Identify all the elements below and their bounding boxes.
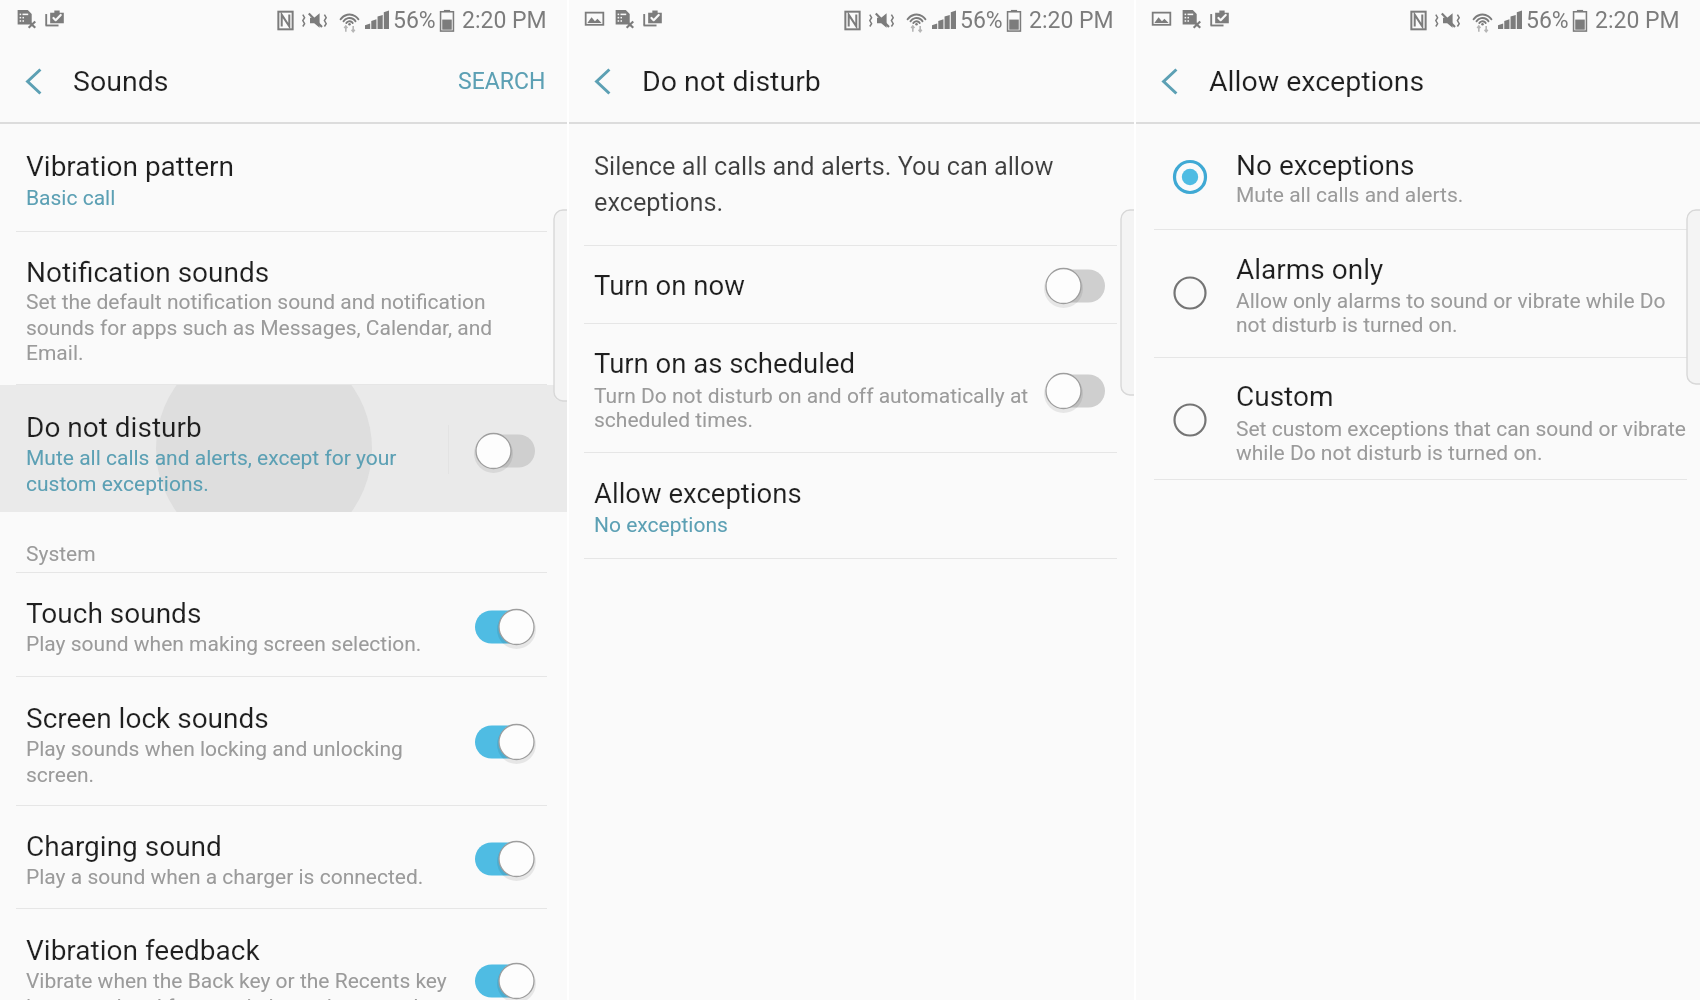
staticText: Alarms only [1236,253,1384,286]
button[interactable]: Turn off [464,955,548,1000]
staticText: Set the default notification sound and n… [26,290,504,365]
staticText: Basic call [26,186,116,211]
button[interactable]: Charging sound [0,807,460,909]
button[interactable]: Navigate up [1144,55,1196,107]
staticText: No exceptions [594,513,728,538]
button[interactable]: Navigate up [577,55,629,107]
staticText: Mute all calls and alerts. [1236,183,1464,208]
staticText: 2:20 PM [1029,7,1114,34]
staticText: Turn Do not disturb on and off automatic… [594,384,1036,432]
staticText: 56% [1526,7,1569,34]
staticText: Turn on as scheduled [594,347,856,379]
staticText: 2:20 PM [462,7,547,34]
staticText: Do not disturb [26,411,202,444]
staticText: SEARCH [458,68,546,95]
staticText: Vibration feedback [26,934,260,967]
staticText: System [26,542,96,567]
staticText: Allow exceptions [1209,65,1425,98]
button[interactable]: Do not disturb [0,385,440,512]
staticText: Vibration pattern [26,150,234,183]
staticText: 2:20 PM [1595,7,1680,34]
staticText: Play sound when making screen selection. [26,632,422,657]
button[interactable]: No exceptions [1136,125,1700,229]
staticText: Touch sounds [26,597,202,630]
staticText: Vibrate when the Back key or the Recents… [26,969,458,1000]
staticText: Mute all calls and alerts, except for yo… [26,446,421,496]
staticText: Screen lock sounds [26,702,269,735]
button[interactable]: Navigate up [8,55,60,107]
staticText: Set custom exceptions that can sound or … [1236,417,1694,465]
button[interactable]: Turn on as scheduled [569,325,1029,452]
button[interactable]: Notification sounds [0,232,567,384]
staticText: Charging sound [26,830,222,863]
button[interactable]: Allow exceptions [569,454,1134,558]
button[interactable]: Turn on now [569,247,1029,323]
button[interactable]: Turn off [464,833,548,885]
staticText: 56% [960,7,1003,34]
button[interactable]: Vibration pattern [0,131,567,231]
button[interactable]: Turn off [464,601,548,653]
staticText: 56% [393,7,436,34]
staticText: Silence all calls and alerts. You can al… [594,152,1072,217]
staticText: Custom [1236,380,1334,413]
staticText: Play a sound when a charger is connected… [26,865,424,890]
button[interactable]: Screen lock sounds [0,678,460,805]
staticText: Do not disturb [642,65,821,98]
button[interactable]: Touch sounds [0,574,460,676]
button[interactable]: Vibration feedback [0,910,460,1000]
button[interactable]: Turn on [1041,260,1125,312]
staticText: No exceptions [1236,149,1415,182]
button[interactable]: SEARCH [446,56,557,106]
staticText: Allow only alarms to sound or vibrate wh… [1236,289,1681,337]
staticText: Notification sounds [26,256,270,289]
button[interactable]: Turn on [471,425,555,477]
staticText: Sounds [73,65,169,98]
button[interactable]: Turn off [464,716,548,768]
button[interactable]: Turn on [1041,365,1125,417]
staticText: Turn on now [594,269,745,301]
staticText: Play sounds when locking and unlocking s… [26,737,426,787]
button[interactable]: Custom [1136,359,1700,479]
staticText: Allow exceptions [594,477,802,509]
button[interactable]: Alarms only [1136,231,1700,357]
